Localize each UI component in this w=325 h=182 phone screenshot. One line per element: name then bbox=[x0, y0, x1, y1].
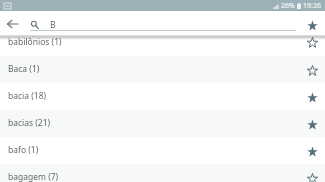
staticText: babilônios (1) bbox=[8, 36, 62, 48]
button[interactable]: Toggle favourites filter bbox=[304, 17, 320, 33]
button[interactable]: Baca (1) bbox=[0, 56, 325, 83]
staticText: Baca (1) bbox=[8, 63, 40, 75]
button[interactable]: bacia (18) bbox=[0, 83, 325, 110]
button[interactable]: Back bbox=[5, 16, 20, 31]
button[interactable]: bacias (21) bbox=[0, 110, 325, 137]
staticText: bacias (21) bbox=[8, 117, 51, 129]
button[interactable]: babilônios (1) bbox=[0, 36, 325, 55]
staticText: bafo (1) bbox=[8, 144, 39, 156]
staticText: 19:26 bbox=[303, 1, 321, 11]
button[interactable]: bafo (1) bbox=[0, 137, 325, 164]
button[interactable]: bagagem (7) bbox=[0, 164, 325, 182]
staticText: B bbox=[50, 19, 56, 31]
staticText: bacia (18) bbox=[8, 90, 47, 102]
staticText: 26% bbox=[281, 1, 295, 11]
staticText: bagagem (7) bbox=[8, 171, 59, 182]
